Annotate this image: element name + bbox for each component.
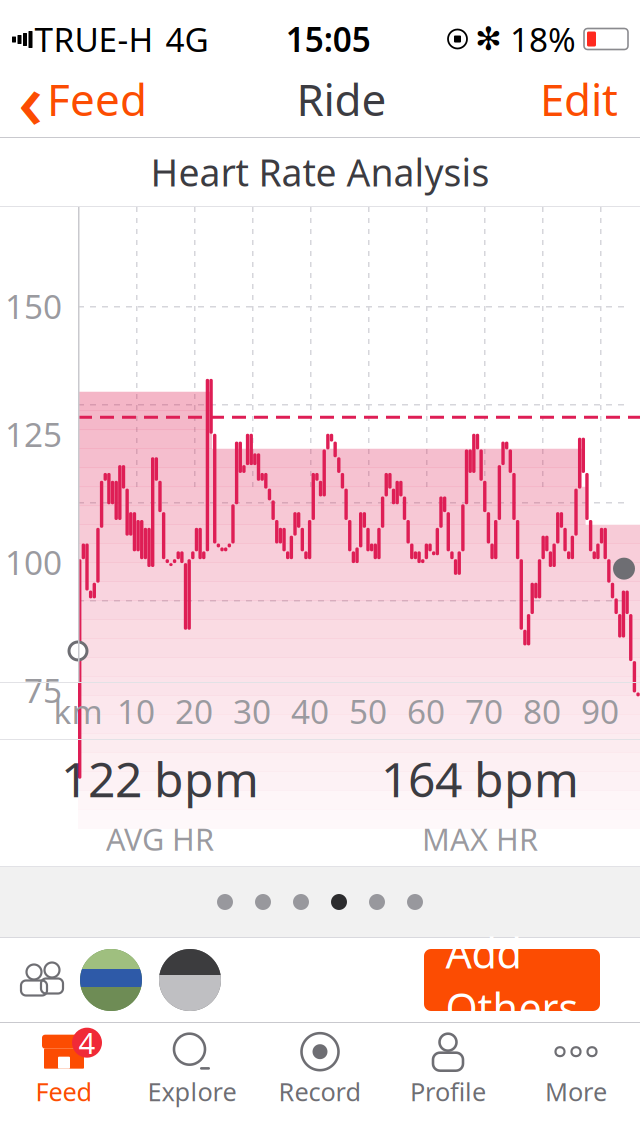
- staticText: Feed: [47, 70, 147, 128]
- staticText: Explore: [147, 1075, 236, 1108]
- button[interactable]: Explore: [128, 1026, 256, 1116]
- staticText: Feed: [35, 1075, 92, 1108]
- staticText: 70: [465, 689, 503, 733]
- button[interactable]: Add Others: [424, 949, 640, 1011]
- button[interactable]: Athlete photo: [80, 949, 142, 1011]
- staticText: 122 bpm: [61, 747, 259, 810]
- button[interactable]: More: [512, 1026, 640, 1116]
- button[interactable]: 4: [0, 1026, 128, 1116]
- staticText: ✻: [475, 21, 502, 57]
- staticText: AVG HR: [106, 818, 214, 859]
- staticText: 100: [5, 540, 62, 584]
- staticText: More: [545, 1075, 607, 1108]
- button[interactable]: Edit: [526, 61, 640, 137]
- staticText: 150: [5, 284, 62, 328]
- staticText: 4G: [165, 17, 208, 61]
- staticText: TRUE-H: [34, 17, 153, 61]
- staticText: MAX HR: [422, 818, 538, 859]
- staticText: 40: [291, 689, 329, 733]
- staticText: Heart Rate Analysis: [150, 147, 489, 197]
- button[interactable]: Athlete photo: [142, 949, 221, 1011]
- staticText: Profile: [410, 1075, 486, 1108]
- button[interactable]: Profile: [384, 1026, 512, 1116]
- staticText: ‹: [18, 48, 43, 150]
- staticText: Record: [278, 1075, 361, 1108]
- button[interactable]: ‹: [0, 61, 157, 137]
- button[interactable]: Record: [256, 1026, 384, 1116]
- staticText: 90: [581, 689, 619, 733]
- staticText: 60: [407, 689, 445, 733]
- button[interactable]: Tagged athletes: [0, 949, 80, 1011]
- staticText: Ride: [296, 70, 386, 128]
- staticText: 15:05: [286, 17, 371, 61]
- staticText: 125: [5, 412, 62, 456]
- staticText: Add Others: [445, 925, 578, 1035]
- staticText: 75: [24, 668, 62, 712]
- staticText: 50: [349, 689, 387, 733]
- staticText: 80: [523, 689, 561, 733]
- staticText: 10: [117, 689, 155, 733]
- staticText: Edit: [540, 70, 618, 128]
- staticText: km: [53, 689, 102, 733]
- staticText: 4: [78, 1023, 95, 1062]
- staticText: 18%: [510, 17, 576, 61]
- staticText: 30: [233, 689, 271, 733]
- staticText: 164 bpm: [381, 747, 579, 810]
- staticText: 20: [175, 689, 213, 733]
